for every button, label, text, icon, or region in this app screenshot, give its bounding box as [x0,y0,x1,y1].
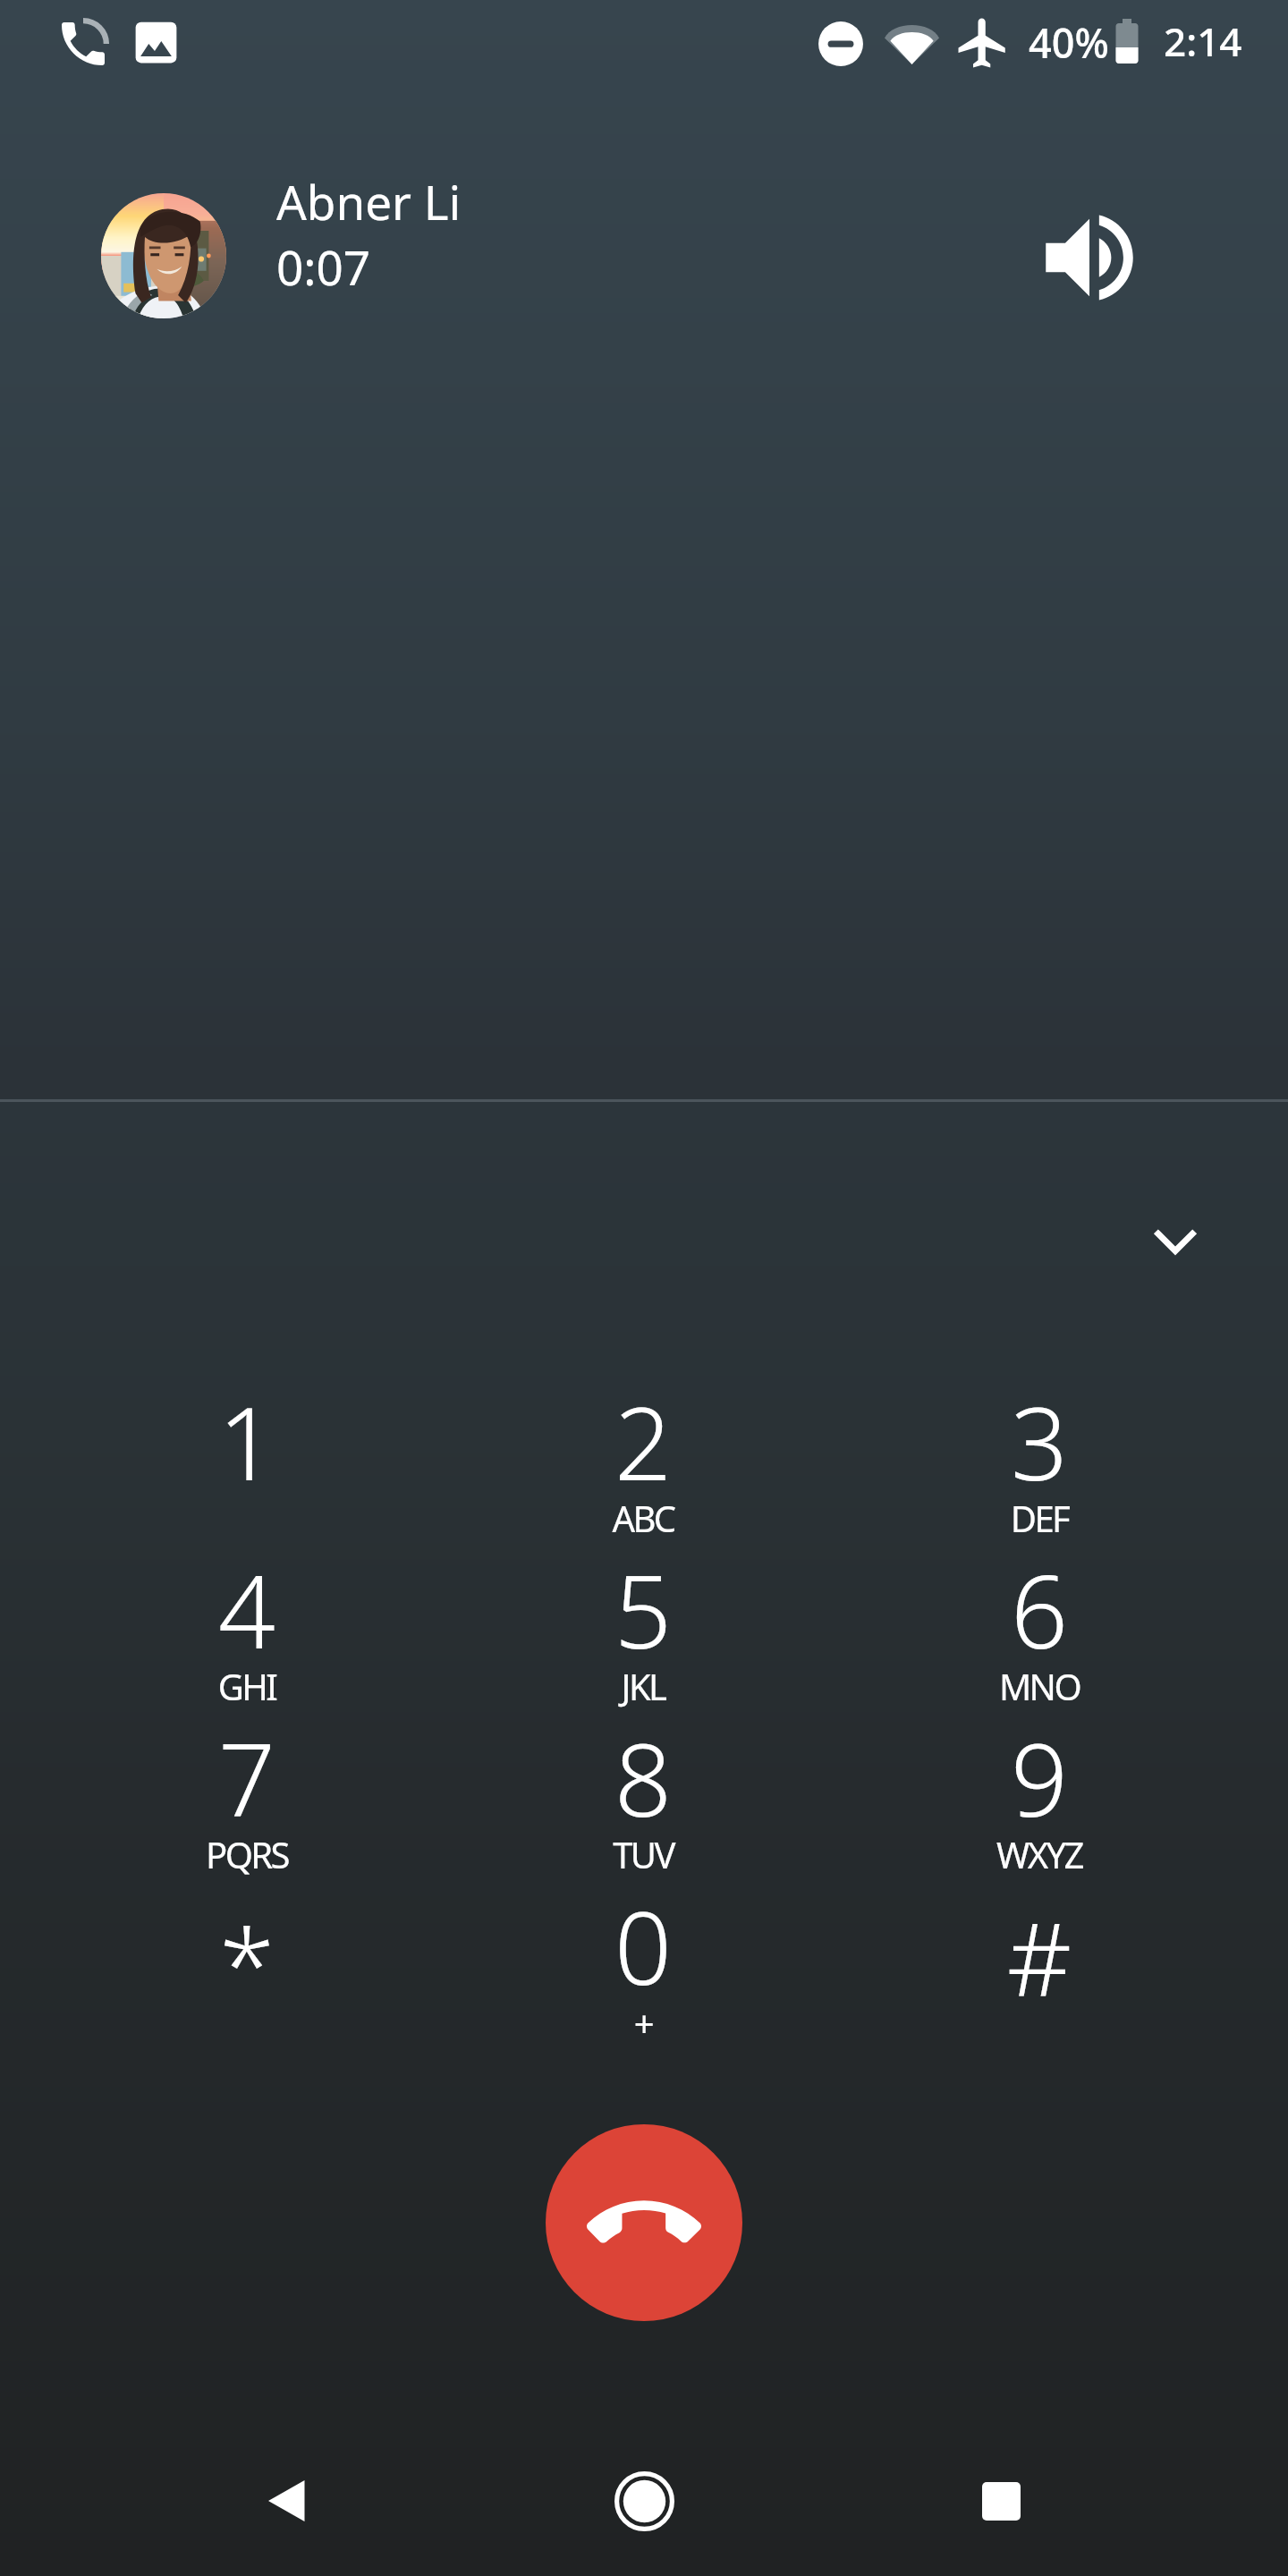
staticText: DEF [843,1494,1236,1542]
button[interactable]: 7 [50,1681,444,1849]
staticText: 0 [446,1877,840,2014]
button[interactable]: 2 [446,1344,840,1513]
staticText: PQRS [50,1830,444,1878]
staticText: 4 [50,1541,444,1678]
staticText: TUV [446,1830,840,1878]
button[interactable]: 0 [446,1849,840,2017]
button[interactable]: 8 [446,1681,840,1849]
staticText: # [843,1889,1236,2026]
staticText: 6 [843,1541,1236,1678]
staticText: ABC [446,1494,840,1542]
button[interactable]: # [843,1849,1236,2017]
button[interactable]: Recents [938,2438,1063,2563]
button[interactable]: 1 [50,1344,444,1513]
button[interactable]: 6 [843,1513,1236,1681]
button[interactable]: 3 [843,1344,1236,1513]
button[interactable]: 4 [50,1513,444,1681]
button[interactable]: Abner Li [276,161,831,313]
staticText: 2:14 [1164,14,1242,68]
staticText: 2 [446,1373,840,1510]
staticText: 9 [843,1709,1236,1846]
staticText: 8 [446,1709,840,1846]
staticText: WXYZ [843,1830,1236,1878]
button[interactable]: 5 [446,1513,840,1681]
button[interactable]: Back [226,2438,352,2563]
staticText: 3 [843,1373,1236,1510]
staticText: + [446,1998,840,2046]
staticText: MNO [843,1662,1236,1710]
staticText: Abner Li [276,169,462,233]
staticText: * [50,1894,444,2031]
button[interactable]: Home [581,2438,707,2563]
button[interactable]: * [50,1849,444,2017]
staticText: 1 [50,1373,444,1510]
button[interactable]: 9 [843,1681,1236,1849]
staticText: 0:07 [276,234,371,299]
button[interactable]: End call [546,2124,742,2321]
button[interactable]: Contact photo [101,193,226,318]
staticText: JKL [446,1662,840,1710]
staticText: 7 [50,1709,444,1846]
button[interactable]: Speaker [1022,191,1157,325]
staticText: 40% [1029,15,1109,70]
staticText: GHI [50,1662,444,1710]
staticText: 5 [446,1541,840,1678]
button[interactable]: Collapse dialpad [1113,1178,1238,1303]
